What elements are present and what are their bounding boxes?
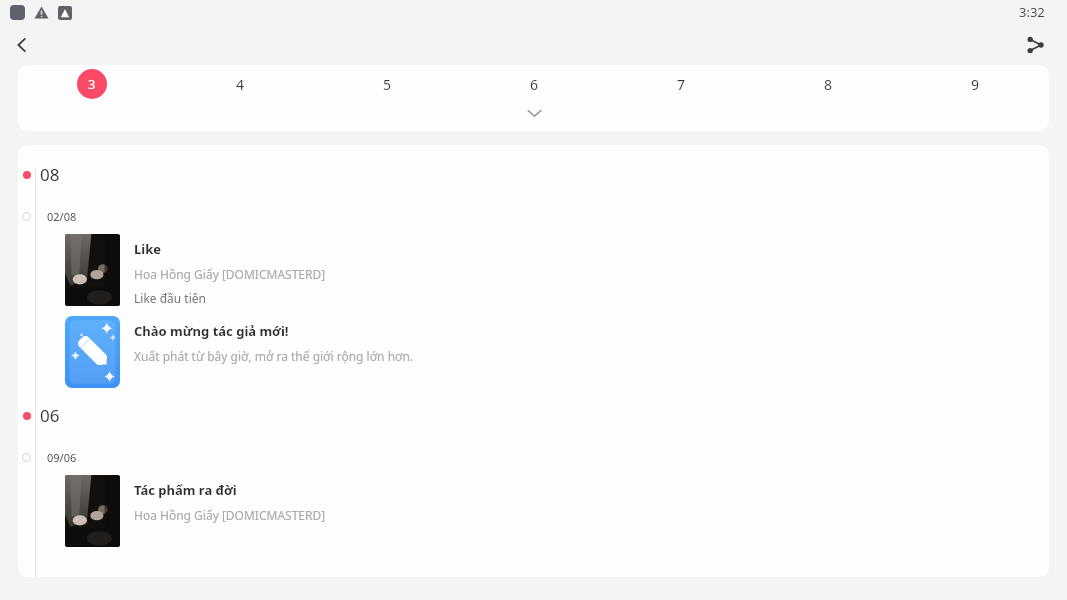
staticText: 3	[88, 75, 96, 93]
staticText: 09/06	[47, 450, 77, 465]
button[interactable]: Like	[65, 234, 1033, 306]
staticText: Tác phẩm ra đời	[134, 481, 237, 499]
staticText: Hoa Hồng Giấy [DOMICMASTERD]	[134, 507, 326, 523]
staticText: 06	[40, 404, 60, 427]
staticText: Xuất phát từ bây giờ, mở ra thế giới rộn…	[134, 348, 414, 364]
staticText: Like đầu tiên	[134, 290, 206, 306]
staticText: Chào mừng tác giả mới!	[134, 322, 289, 340]
staticText: 6	[530, 75, 539, 94]
button[interactable]: Tác phẩm ra đời	[65, 475, 1033, 547]
button[interactable]: 5	[314, 66, 461, 102]
staticText: 9	[971, 75, 980, 94]
button[interactable]: Back	[0, 24, 44, 65]
staticText: 7	[677, 75, 686, 94]
button[interactable]: Share	[1013, 24, 1057, 65]
button[interactable]: 8	[755, 66, 902, 102]
button[interactable]: 6	[461, 66, 608, 102]
button[interactable]: 3	[18, 66, 166, 102]
staticText: 8	[824, 75, 833, 94]
staticText: Hoa Hồng Giấy [DOMICMASTERD]	[134, 266, 326, 282]
button[interactable]: 7	[608, 66, 755, 102]
staticText: 02/08	[47, 209, 77, 224]
staticText: 5	[383, 75, 392, 94]
button[interactable]: Expand calendar	[517, 104, 551, 122]
staticText: 3:32	[1019, 3, 1045, 21]
staticText: 08	[40, 163, 60, 186]
button[interactable]: Chào mừng tác giả mới!	[65, 316, 1033, 388]
staticText: 4	[236, 75, 245, 94]
button[interactable]: 4	[166, 66, 314, 102]
button[interactable]: 9	[902, 66, 1049, 102]
staticText: Like	[134, 240, 161, 258]
